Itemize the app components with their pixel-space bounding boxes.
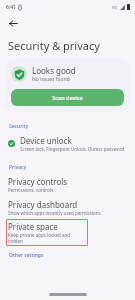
staticText: Looks good [32,65,76,76]
staticText: Show which apps recently used permission… [8,210,101,216]
staticText: Privacy [9,164,27,171]
staticText: Security & privacy [8,38,100,53]
button[interactable]: Device unlock [0,132,135,155]
staticText: 6:41 [6,4,16,11]
staticText: Privacy controls [8,176,68,187]
staticText: Privacy dashboard [8,199,78,210]
button[interactable]: Looks good [5,59,130,112]
staticText: Private space [8,221,58,232]
button[interactable]: Private space [6,219,88,246]
button[interactable]: Privacy controls [0,173,135,196]
staticText: Keep private apps locked and hidden [8,232,85,244]
staticText: Other settings [9,252,44,259]
staticText: No issues found [32,76,70,83]
staticText: Scan device [52,94,83,101]
staticText: Security [9,123,29,130]
staticText: Screen lock, Fingerprint Unlock, Duress … [20,146,125,152]
staticText: Permissions, controls [8,187,54,193]
button[interactable]: Back [0,14,26,32]
button[interactable]: Privacy dashboard [0,196,135,219]
button[interactable]: Scan device [11,89,124,106]
staticText: 5G [112,5,118,10]
staticText: Device unlock [20,135,72,146]
